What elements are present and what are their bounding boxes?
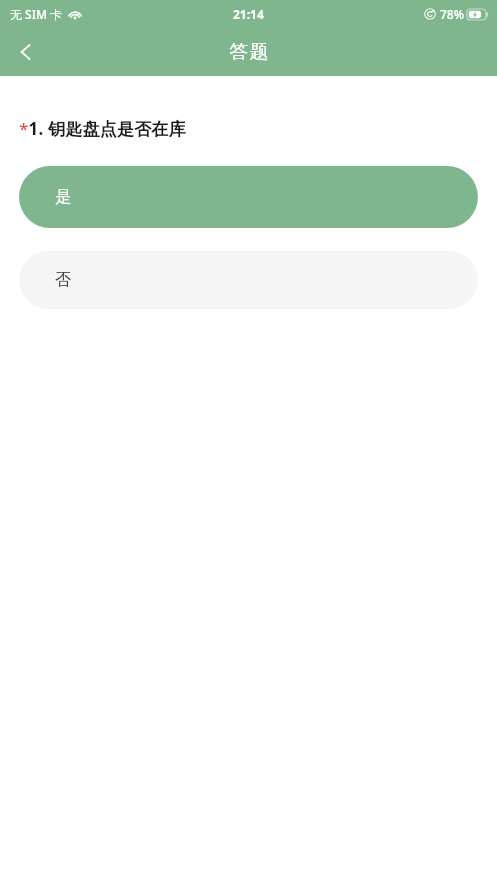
staticText: 无 SIM 卡: [10, 6, 63, 22]
staticText: 78%: [440, 6, 464, 22]
staticText: 21:14: [233, 6, 264, 22]
staticText: 是: [55, 187, 71, 207]
staticText: 答题: [229, 40, 269, 64]
staticText: *1. 钥匙盘点是否在库: [19, 117, 186, 140]
staticText: 否: [55, 270, 71, 290]
button[interactable]: 否: [19, 251, 478, 309]
button[interactable]: Back: [0, 28, 52, 76]
button[interactable]: 是: [19, 166, 478, 228]
